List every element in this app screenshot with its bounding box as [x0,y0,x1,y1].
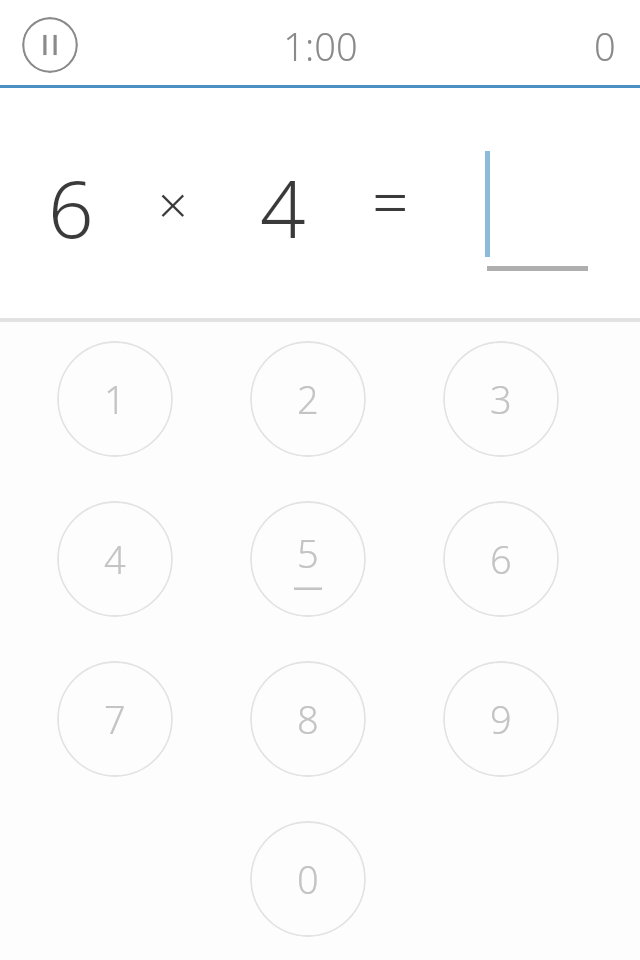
button[interactable]: 3 [443,341,559,457]
button[interactable]: 7 [57,661,173,777]
staticText: 6 [48,152,94,261]
button[interactable]: 9 [443,661,559,777]
staticText: 4 [260,152,306,261]
button[interactable]: Pause [22,17,78,73]
staticText: 6 [490,533,512,585]
button[interactable]: 1 [57,341,173,457]
button[interactable]: 2 [250,341,366,457]
staticText: 1:00 [283,20,358,72]
staticText: 0 [297,853,319,905]
staticText: 1 [104,373,126,425]
staticText: × [158,168,188,239]
button[interactable]: 8 [250,661,366,777]
staticText: 2 [297,373,319,425]
staticText: 0 [594,20,616,72]
staticText: 7 [104,693,126,745]
button[interactable]: 4 [57,501,173,617]
button[interactable]: 6 [443,501,559,617]
staticText: 8 [297,693,319,745]
staticText: 4 [104,533,126,585]
staticText: 3 [490,373,512,425]
button[interactable]: 0 [250,821,366,937]
staticText: 9 [490,693,512,745]
staticText: 5 [297,527,319,579]
staticText: = [372,158,409,245]
button[interactable]: 5 [250,501,366,617]
